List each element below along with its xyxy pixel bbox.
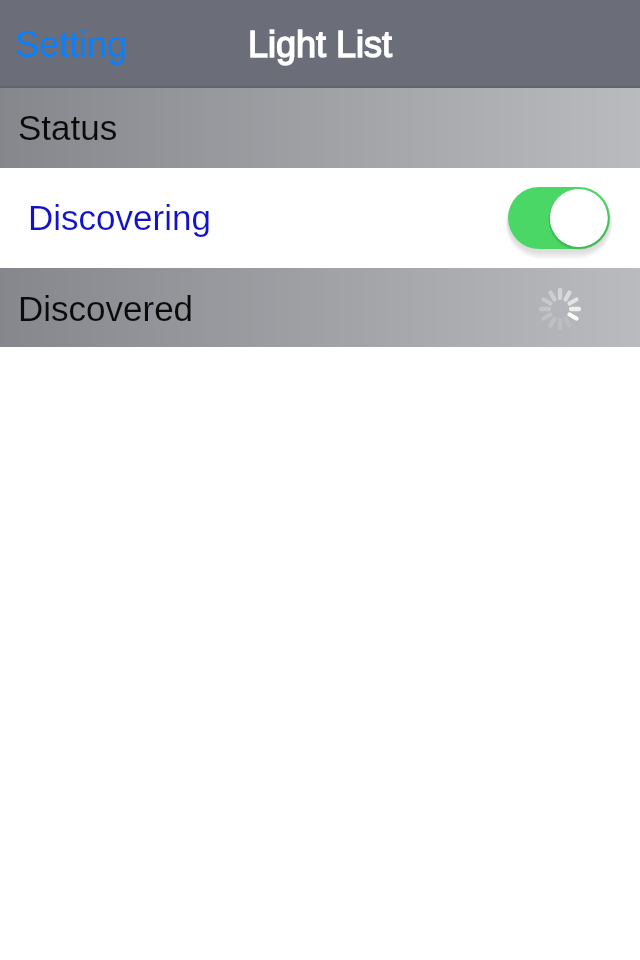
button[interactable]: Discovering bbox=[0, 168, 640, 268]
staticText: Discovered bbox=[18, 289, 194, 328]
staticText: Setting bbox=[15, 24, 128, 64]
staticText: Discovering bbox=[28, 198, 211, 237]
staticText: Status bbox=[18, 108, 118, 147]
button[interactable]: Setting bbox=[4, 12, 139, 76]
button[interactable]: Discovering toggle bbox=[504, 181, 614, 255]
staticText: Light List bbox=[248, 24, 393, 64]
